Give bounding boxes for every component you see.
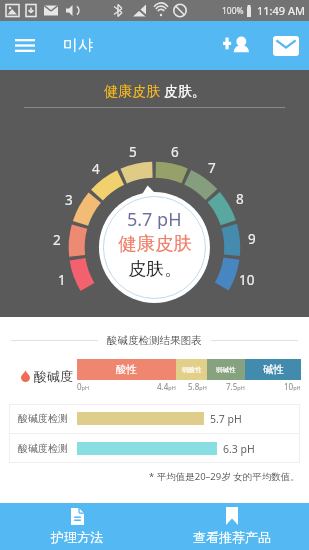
button[interactable]: 弱碱性: [207, 359, 245, 380]
staticText: 5.8pH: [188, 381, 207, 392]
staticText: 2: [53, 231, 61, 249]
button[interactable]: 碱性: [245, 359, 301, 380]
staticText: 10: [239, 271, 255, 289]
staticText: 4.4pH: [157, 381, 176, 392]
button[interactable]: 酸碱度: [21, 367, 73, 385]
button[interactable]: 酸碱度检测: [9, 404, 300, 433]
staticText: 酸碱度: [34, 368, 73, 384]
staticText: 0pH: [77, 381, 90, 392]
staticText: 酸碱度检测: [18, 442, 68, 455]
staticText: 9: [248, 230, 256, 248]
staticText: 护理方法: [51, 529, 103, 545]
button[interactable]: Menu: [4, 21, 46, 70]
staticText: 3: [65, 191, 73, 209]
button[interactable]: 酸碱度检测: [9, 434, 300, 463]
button[interactable]: Mail: [263, 21, 309, 70]
button[interactable]: 弱酸性: [176, 359, 207, 380]
button[interactable]: 护理方法: [0, 503, 154, 550]
button[interactable]: 酸性: [77, 359, 176, 380]
staticText: 7: [208, 159, 216, 177]
button[interactable]: Add person: [214, 21, 260, 70]
staticText: 查看推荐产品: [193, 529, 271, 545]
staticText: * 平均值是20–29岁 女的平均数值。: [149, 470, 300, 483]
staticText: 100%: [222, 5, 244, 17]
staticText: 酸碱度检测: [18, 412, 68, 425]
staticText: 健康皮肤: [118, 232, 192, 254]
staticText: 弱碱性: [216, 366, 236, 374]
staticText: 健康皮肤 皮肤。: [104, 81, 206, 100]
staticText: 미샤: [63, 36, 93, 55]
staticText: 4: [92, 160, 100, 178]
staticText: 6: [171, 143, 179, 161]
staticText: 弱酸性: [182, 366, 202, 374]
staticText: 酸性: [116, 363, 137, 376]
staticText: 酸碱度检测结果图表: [107, 334, 202, 347]
staticText: 5.7 pH: [127, 207, 182, 229]
staticText: 6.3 pH: [223, 442, 255, 456]
staticText: 碱性: [263, 363, 284, 376]
staticText: 5.7 pH: [210, 412, 242, 426]
staticText: 11:49 AM: [257, 3, 305, 18]
button[interactable]: 查看推荐产品: [154, 503, 309, 550]
staticText: 1: [58, 271, 66, 289]
staticText: 7.5pH: [226, 381, 245, 392]
staticText: 10pH: [284, 381, 301, 392]
staticText: 8: [236, 190, 244, 208]
staticText: 皮肤。: [128, 258, 182, 280]
staticText: 5: [129, 143, 137, 161]
